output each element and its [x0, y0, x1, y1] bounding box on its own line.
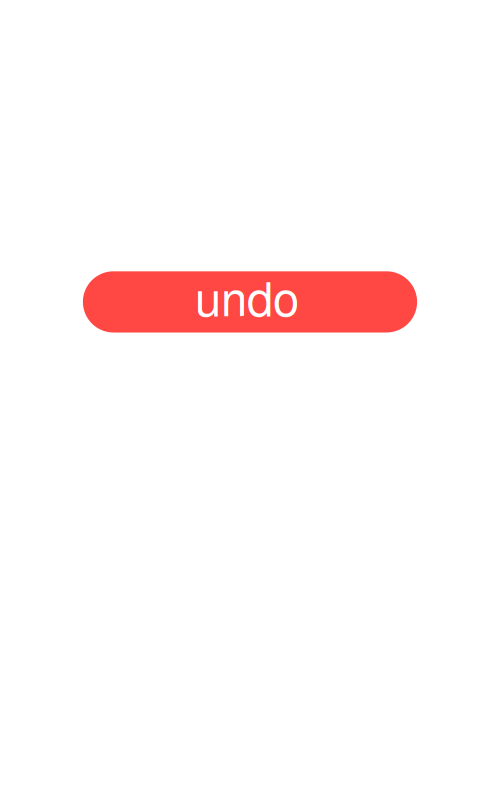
- staticText: undo: [195, 262, 299, 330]
- button[interactable]: undo: [83, 271, 417, 332]
